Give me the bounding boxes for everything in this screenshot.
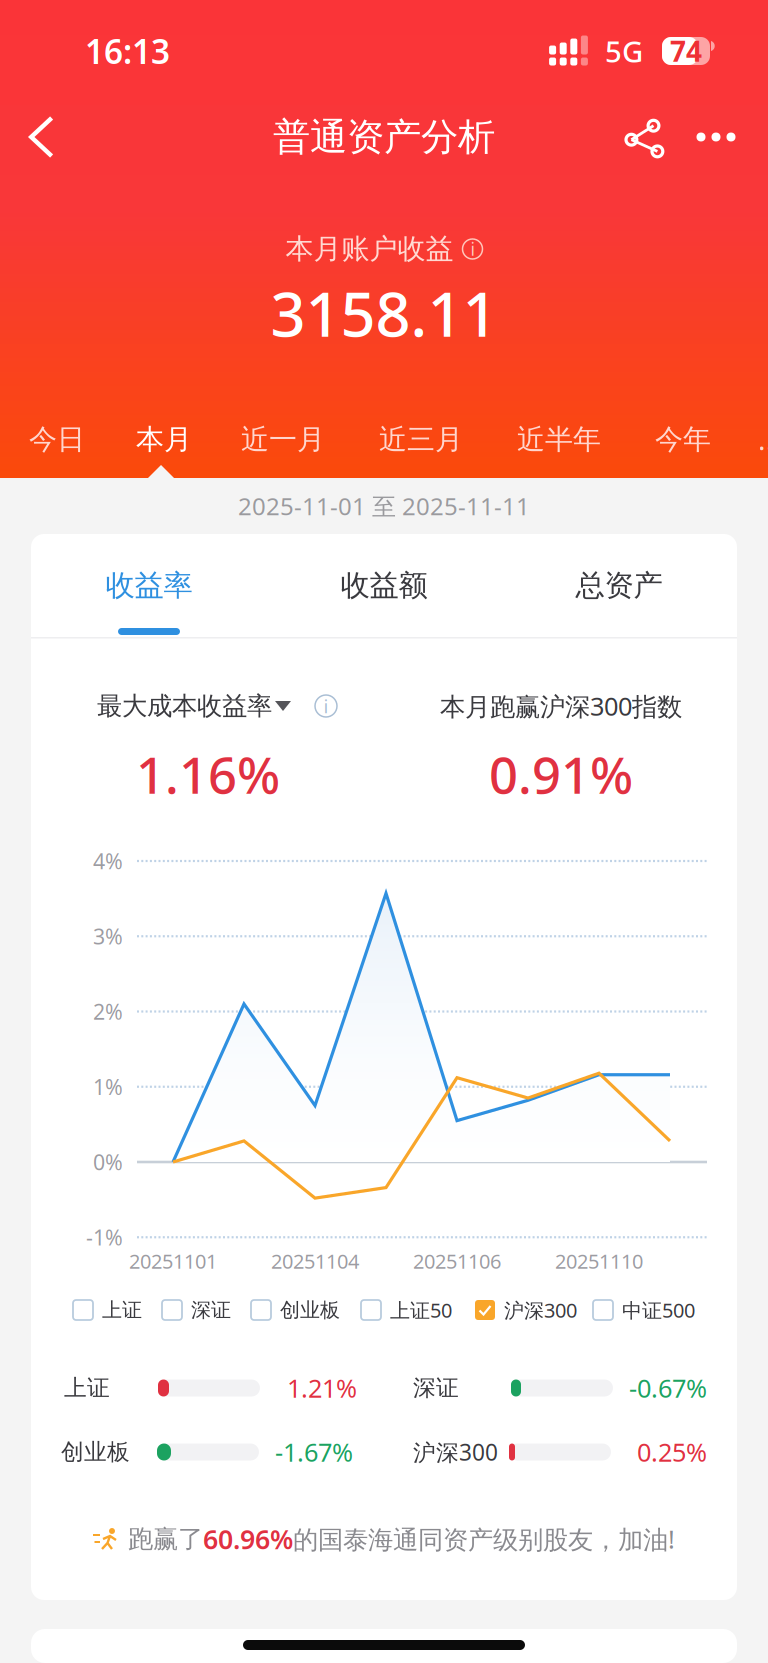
staticText: 沪深300 xyxy=(413,1437,498,1467)
staticText: 上证50 xyxy=(390,1297,452,1323)
staticText: 1% xyxy=(93,1073,123,1101)
button[interactable]: 今年 xyxy=(0,414,715,465)
staticText: 20251101 xyxy=(129,1248,217,1274)
staticText: i xyxy=(470,237,474,260)
staticText: 收益率 xyxy=(105,567,192,603)
staticText: 近三月 xyxy=(379,422,463,457)
button[interactable]: 上证50 xyxy=(361,1296,452,1324)
button[interactable]: More options xyxy=(688,111,744,163)
staticText: -1% xyxy=(86,1223,123,1251)
staticText: 2025-11-01 至 2025-11-11 xyxy=(238,490,530,522)
staticText: -0.67% xyxy=(629,1371,707,1405)
button[interactable]: 总资产 xyxy=(501,534,736,637)
button[interactable]: 近一月 xyxy=(0,414,331,465)
button[interactable]: Share xyxy=(614,106,670,162)
button[interactable]: 收益率 xyxy=(31,534,266,637)
staticText: 近半年 xyxy=(517,422,601,457)
button[interactable]: 中证500 xyxy=(593,1296,695,1324)
staticText: 今年 xyxy=(655,422,711,457)
staticText: 上证 xyxy=(102,1298,142,1322)
staticText: 收益额 xyxy=(340,567,427,603)
staticText: 今日 xyxy=(29,422,85,457)
button[interactable]: 今日 xyxy=(0,414,89,465)
staticText: 本月跑赢沪深300指数 xyxy=(440,689,682,723)
button[interactable]: 近半年 xyxy=(0,414,607,465)
staticText: 本月 xyxy=(136,422,192,457)
staticText: 3% xyxy=(93,922,123,950)
staticText: 去 xyxy=(758,421,768,458)
staticText: 最大成本收益率 xyxy=(97,690,272,721)
staticText: 4% xyxy=(93,847,123,875)
button[interactable]: 近三月 xyxy=(0,414,469,465)
button[interactable]: 沪深300 xyxy=(475,1296,577,1324)
staticText: 3158.11 xyxy=(270,272,497,354)
staticText: 深证 xyxy=(413,1374,459,1402)
staticText: 创业板 xyxy=(61,1438,130,1466)
staticText: 16:13 xyxy=(85,29,170,73)
staticText: -1.67% xyxy=(275,1435,353,1469)
staticText: 20251106 xyxy=(413,1248,501,1274)
button[interactable]: 本月 xyxy=(0,414,196,465)
staticText: 60.96% xyxy=(203,1521,293,1557)
button[interactable]: Back xyxy=(14,109,70,165)
staticText: 1.16% xyxy=(136,740,280,808)
staticText: 总资产 xyxy=(575,567,662,603)
staticText: 的国泰海通同资产级别股友，加油! xyxy=(293,1522,675,1556)
button[interactable]: 去 xyxy=(0,414,768,465)
staticText: 深证 xyxy=(191,1298,231,1322)
staticText: 0.25% xyxy=(637,1435,707,1469)
staticText: 本月账户收益 xyxy=(285,232,453,266)
staticText: 2% xyxy=(93,997,123,1026)
staticText: 上证 xyxy=(64,1374,110,1402)
staticText: 5G xyxy=(605,31,643,70)
button[interactable]: 上证 xyxy=(73,1296,142,1324)
staticText: 20251110 xyxy=(555,1248,643,1274)
staticText: 0.91% xyxy=(489,740,633,808)
staticText: 1.21% xyxy=(287,1371,357,1405)
staticText: 20251104 xyxy=(271,1248,359,1274)
button[interactable]: 创业板 xyxy=(251,1296,340,1324)
staticText: 中证500 xyxy=(622,1297,695,1323)
staticText: 创业板 xyxy=(280,1298,340,1322)
staticText: 沪深300 xyxy=(504,1297,577,1323)
button[interactable]: 收益额 xyxy=(266,534,501,637)
staticText: 0% xyxy=(93,1148,123,1176)
staticText: 跑赢了 xyxy=(128,1523,203,1554)
staticText: 普通资产分析 xyxy=(273,114,495,160)
staticText: 近一月 xyxy=(241,422,325,457)
staticText: i xyxy=(323,694,328,718)
staticText: 74 xyxy=(670,32,702,70)
button[interactable]: 深证 xyxy=(162,1296,231,1324)
